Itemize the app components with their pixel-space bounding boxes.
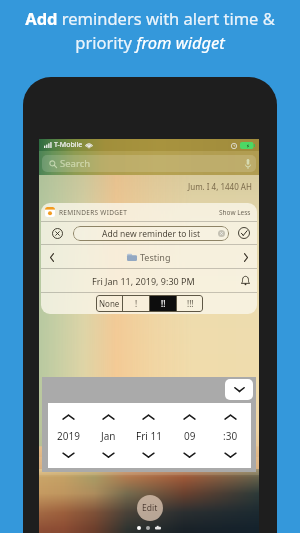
button[interactable]: 09 [169, 403, 210, 468]
button[interactable]: Edit [137, 495, 163, 521]
button[interactable]: 2019 [48, 403, 88, 468]
button[interactable]: :30 [210, 403, 251, 468]
staticText: :30 [223, 429, 238, 443]
staticText: Fri Jan 11, 2019, 9:30 PM [92, 275, 195, 287]
staticText: T-Mobile [54, 140, 83, 150]
staticText: Add reminders with alert time & [25, 7, 275, 29]
staticText: Fri 11 [136, 429, 162, 443]
staticText: !! [161, 298, 166, 309]
button[interactable]: !!! [177, 295, 203, 312]
staticText: 09 [184, 429, 196, 443]
staticText: Jum. I 4, 1440 AH [188, 181, 252, 192]
staticText: Show Less [219, 208, 251, 217]
staticText: None [99, 298, 120, 309]
button[interactable]: Done [238, 227, 250, 239]
staticText: Jan [101, 429, 116, 443]
button[interactable]: Collapse [225, 379, 253, 400]
staticText: priority from widget [75, 31, 225, 53]
button[interactable]: None [96, 295, 122, 312]
button[interactable]: Fri 11 [128, 403, 169, 468]
button[interactable]: Search [42, 155, 256, 172]
staticText: Testing [140, 251, 171, 263]
button[interactable]: Next list [239, 250, 253, 264]
button[interactable]: Add new reminder to list [73, 226, 229, 241]
button[interactable]: Alert [239, 274, 252, 287]
button[interactable]: ! [123, 295, 149, 312]
button[interactable]: !! [150, 295, 176, 312]
staticText: REMINDERS WIDGET [59, 208, 128, 217]
staticText: !!! [187, 298, 194, 309]
staticText: Add new reminder to list [102, 228, 201, 240]
button[interactable]: Jan [88, 403, 128, 468]
staticText: ! [135, 298, 138, 309]
button[interactable]: Show Less [218, 206, 252, 219]
staticText: Search [60, 157, 91, 170]
button[interactable]: Previous list [45, 250, 59, 264]
staticText: Edit [142, 502, 158, 514]
button[interactable]: Cancel [52, 228, 63, 239]
staticText: 2019 [57, 429, 80, 443]
